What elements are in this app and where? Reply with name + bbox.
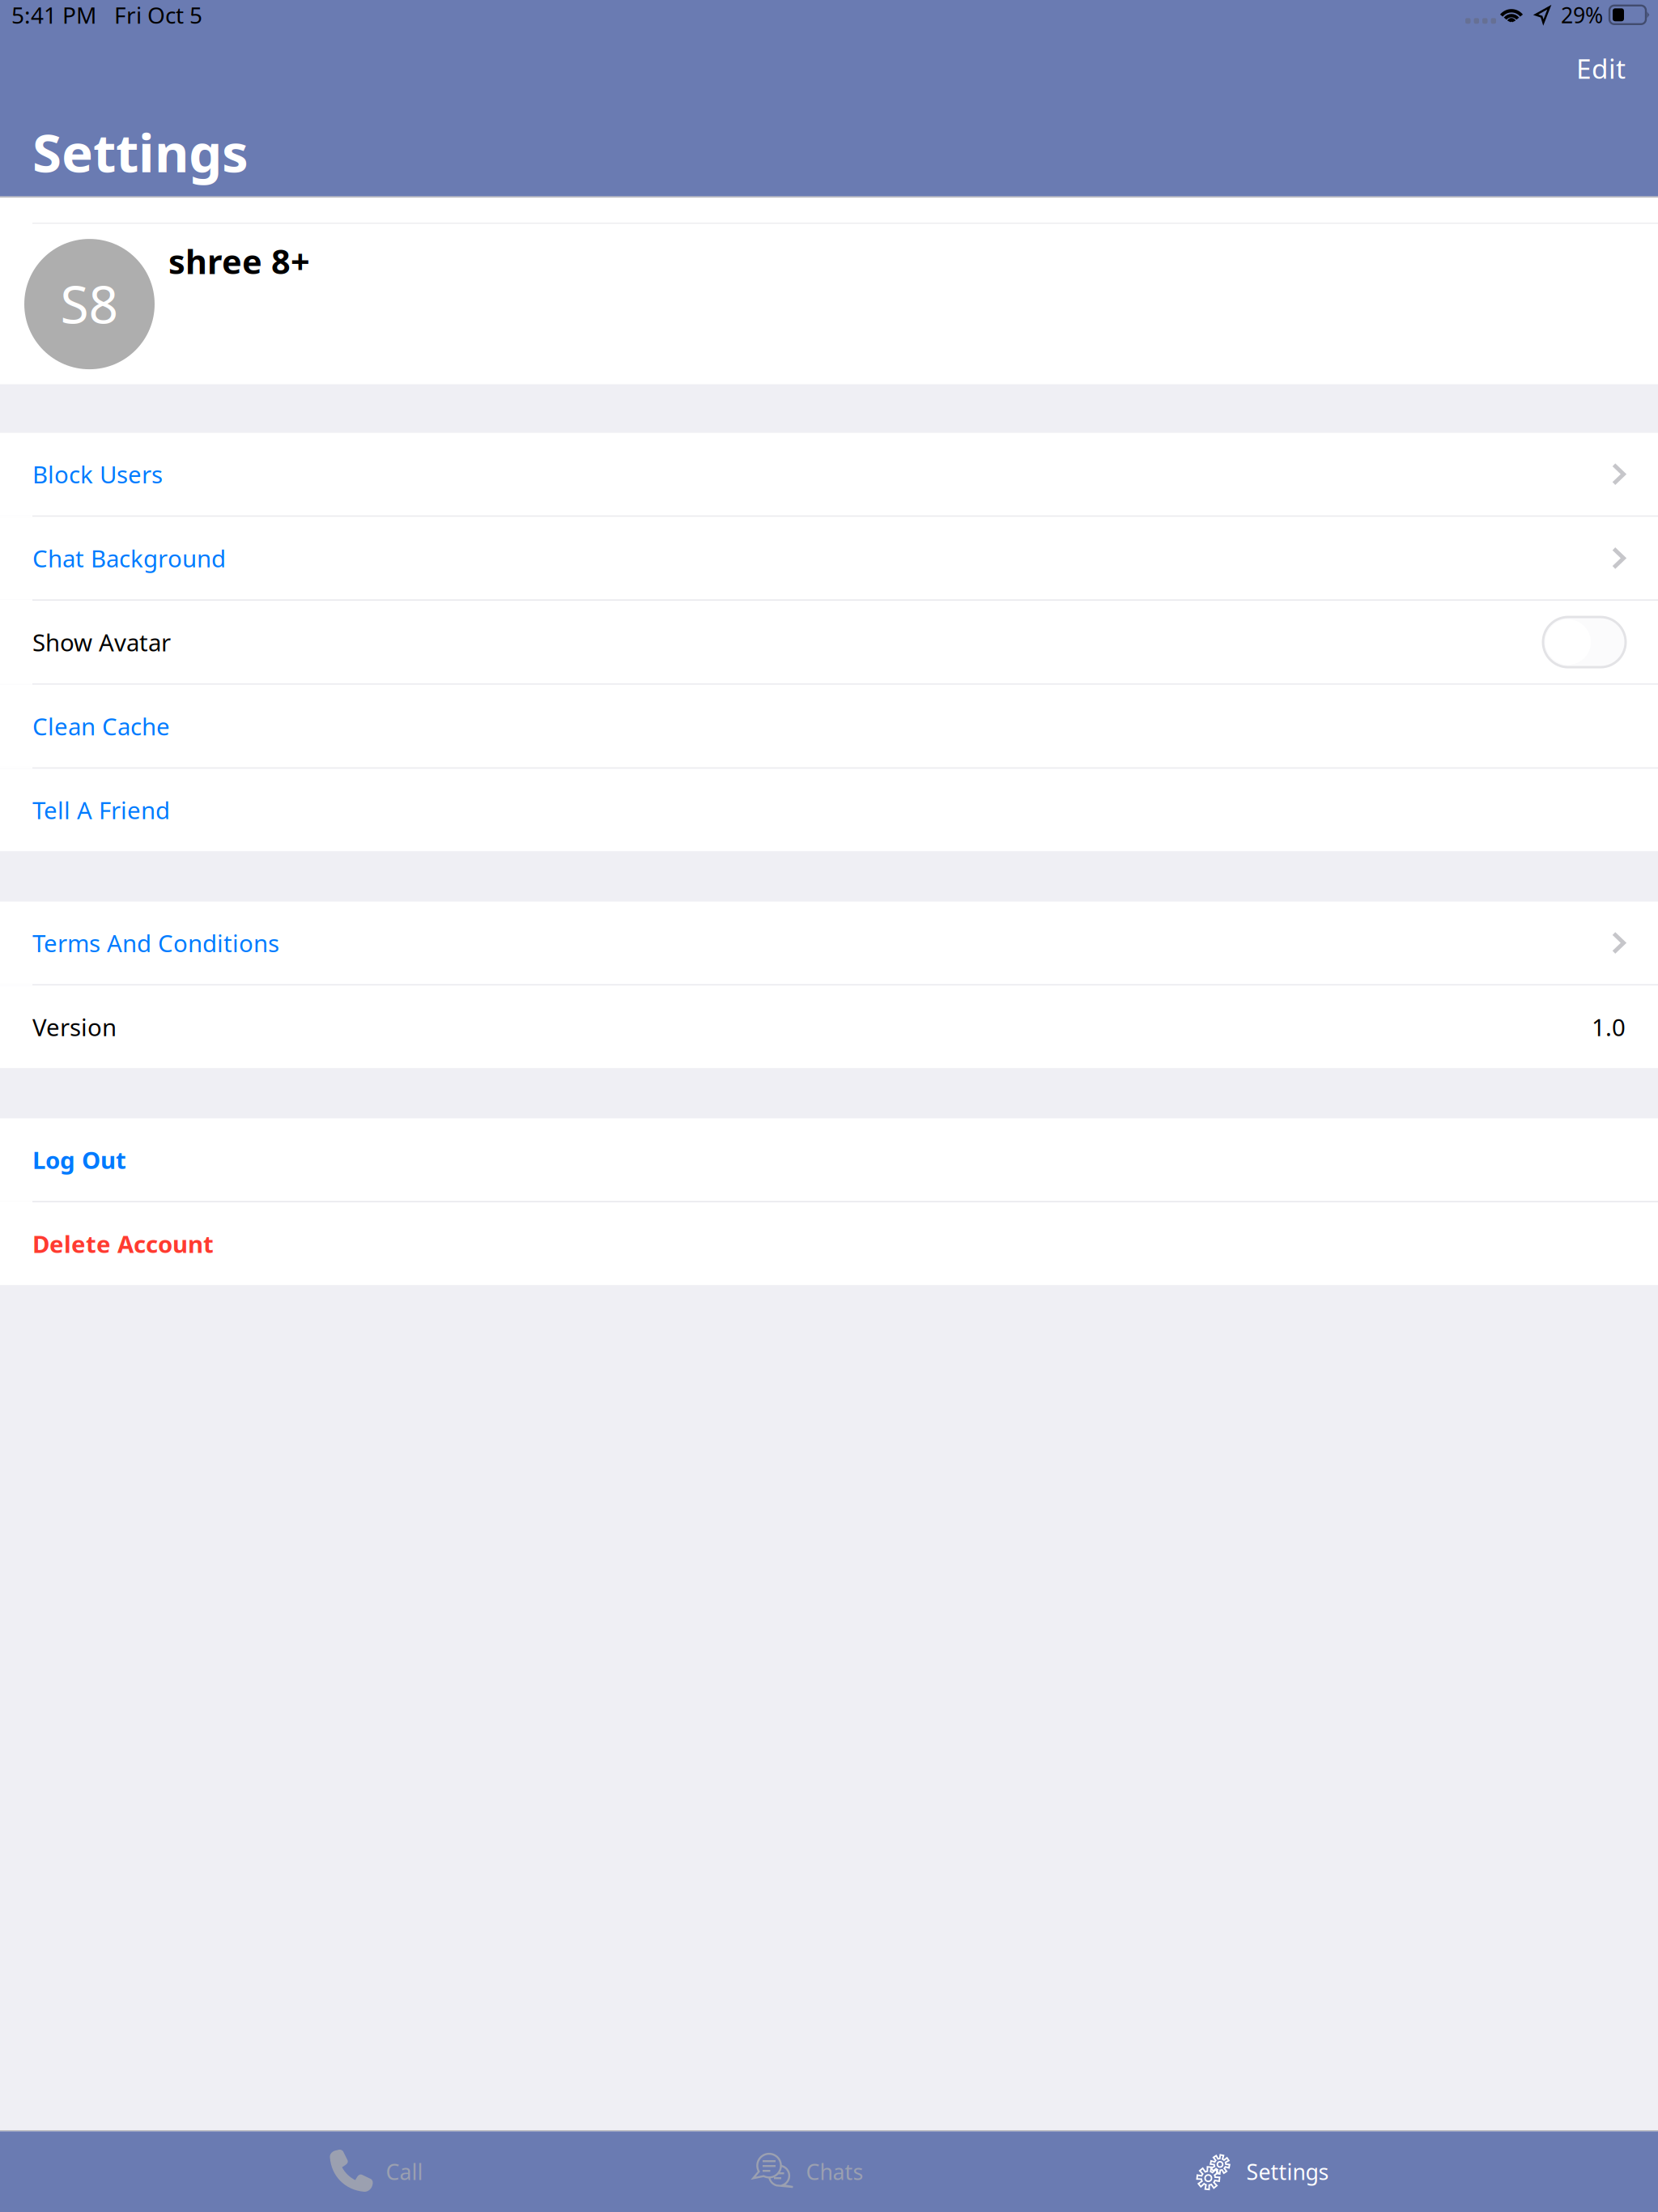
button[interactable]: Delete Account — [0, 1202, 1658, 1285]
button[interactable]: Edit — [1560, 41, 1642, 96]
staticText: Clean Cache — [32, 710, 170, 742]
staticText: 5:41 PM — [11, 0, 96, 30]
staticText: Call — [386, 2157, 423, 2186]
button[interactable]: Chats — [755, 2131, 863, 2212]
staticText: Settings — [1246, 2157, 1329, 2186]
button[interactable]: Log Out — [0, 1118, 1658, 1201]
staticText: Fri Oct 5 — [114, 0, 202, 30]
staticText: Chats — [806, 2157, 863, 2186]
staticText: Chat Background — [32, 542, 226, 574]
staticText: Terms And Conditions — [32, 927, 279, 959]
staticText: Edit — [1576, 50, 1626, 86]
button[interactable]: Block Users — [0, 433, 1658, 516]
staticText: 29% — [1561, 0, 1603, 29]
staticText: Version — [32, 1011, 117, 1043]
button[interactable]: Settings — [1195, 2131, 1329, 2212]
button[interactable]: Call — [329, 2131, 423, 2212]
staticText: 1.0 — [1592, 1011, 1626, 1043]
button[interactable]: Chat Background — [0, 517, 1658, 599]
staticText: Log Out — [32, 1144, 126, 1176]
button[interactable]: Show Avatar — [0, 601, 1658, 683]
button[interactable]: Terms And Conditions — [0, 902, 1658, 984]
button[interactable]: Tell A Friend — [0, 769, 1658, 851]
staticText: Settings — [32, 117, 249, 187]
staticText: shree 8+ — [168, 239, 310, 283]
button[interactable]: S8 — [0, 224, 1658, 384]
staticText: S8 — [60, 269, 119, 338]
staticText: Tell A Friend — [32, 794, 170, 826]
staticText: Block Users — [32, 458, 163, 490]
staticText: Delete Account — [32, 1228, 214, 1260]
button[interactable]: Clean Cache — [0, 685, 1658, 767]
staticText: Show Avatar — [32, 626, 171, 658]
